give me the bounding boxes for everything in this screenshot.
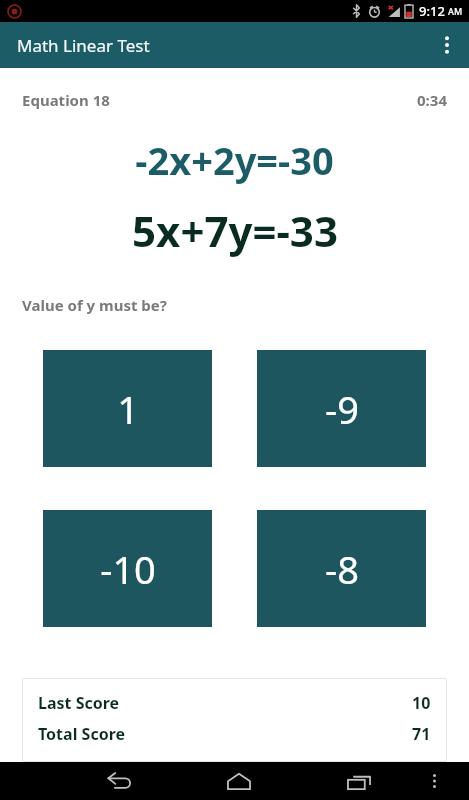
staticText: -8 xyxy=(325,543,359,595)
staticText: Math Linear Test xyxy=(17,34,150,57)
button[interactable]: Home xyxy=(179,762,299,800)
staticText: 5x+7y=-33 xyxy=(132,202,338,259)
staticText: Value of y must be? xyxy=(22,295,167,315)
staticText: -9 xyxy=(325,383,359,435)
button[interactable]: -9 xyxy=(257,350,426,467)
button[interactable]: Back xyxy=(60,762,179,800)
button[interactable]: Menu xyxy=(419,762,449,800)
button[interactable]: 1 xyxy=(43,350,212,467)
staticText: 71 xyxy=(412,723,431,745)
button[interactable]: Last Score xyxy=(22,678,447,762)
button[interactable]: -8 xyxy=(257,510,426,627)
staticText: AM xyxy=(448,5,463,17)
staticText: -10 xyxy=(100,543,156,595)
staticText: Equation 18 xyxy=(22,90,110,110)
staticText: 9:12 xyxy=(419,2,445,20)
staticText: Last Score xyxy=(38,692,120,714)
button[interactable]: Recent apps xyxy=(299,762,419,800)
staticText: 10 xyxy=(412,692,431,714)
button[interactable]: More options xyxy=(425,22,469,68)
staticText: 1 xyxy=(117,383,139,435)
staticText: -2x+2y=-30 xyxy=(135,134,334,186)
staticText: Total Score xyxy=(38,723,126,745)
button[interactable]: -10 xyxy=(43,510,212,627)
staticText: 0:34 xyxy=(417,90,447,110)
